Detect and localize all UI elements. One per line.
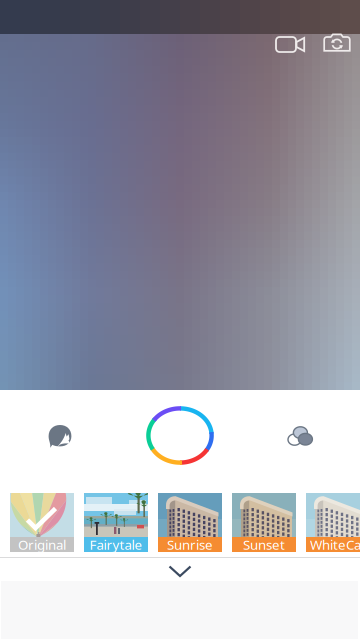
- staticText: Sunset: [243, 536, 285, 553]
- button[interactable]: Take photo: [141, 401, 219, 470]
- staticText: Sunrise: [167, 536, 213, 553]
- staticText: Fairytale: [89, 536, 142, 553]
- button[interactable]: Switch camera: [317, 27, 357, 58]
- button[interactable]: WhiteCat: [306, 493, 360, 552]
- button[interactable]: Fairytale: [84, 493, 148, 552]
- staticText: WhiteCat: [310, 536, 360, 553]
- button[interactable]: Filters: [276, 414, 324, 458]
- button[interactable]: Collapse filters: [160, 557, 200, 586]
- button[interactable]: Sunrise: [158, 493, 222, 552]
- button[interactable]: Original: [10, 493, 74, 552]
- button[interactable]: Stickers: [36, 413, 84, 459]
- button[interactable]: Video mode: [269, 30, 312, 59]
- staticText: Original: [18, 536, 66, 553]
- button[interactable]: Sunset: [232, 493, 296, 552]
